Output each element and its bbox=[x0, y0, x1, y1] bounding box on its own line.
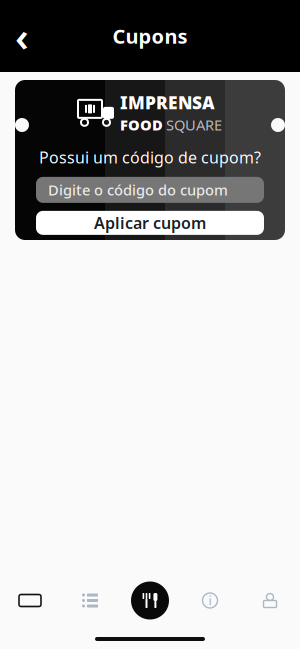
staticText: Digite o código do cupom bbox=[48, 180, 228, 200]
button[interactable]: Orders bbox=[60, 576, 120, 624]
button[interactable]: Coupons bbox=[0, 576, 60, 624]
staticText: Cupons bbox=[112, 23, 187, 49]
staticText: FOOD bbox=[120, 115, 163, 135]
button[interactable]: Information bbox=[180, 576, 240, 624]
staticText: Possui um código de cupom? bbox=[39, 147, 261, 168]
staticText: SQUARE bbox=[166, 115, 222, 135]
staticText: ‹ bbox=[15, 9, 29, 62]
button[interactable]: Aplicar cupom bbox=[36, 211, 264, 235]
button[interactable]: Profile bbox=[240, 576, 300, 624]
staticText: i bbox=[208, 592, 211, 608]
button[interactable]: Menu bbox=[120, 576, 180, 624]
staticText: Aplicar cupom bbox=[94, 212, 206, 233]
button[interactable]: Back bbox=[0, 14, 44, 58]
staticText: IMPRENSA bbox=[120, 91, 215, 114]
button[interactable]: Digite o código do cupom bbox=[36, 177, 264, 203]
